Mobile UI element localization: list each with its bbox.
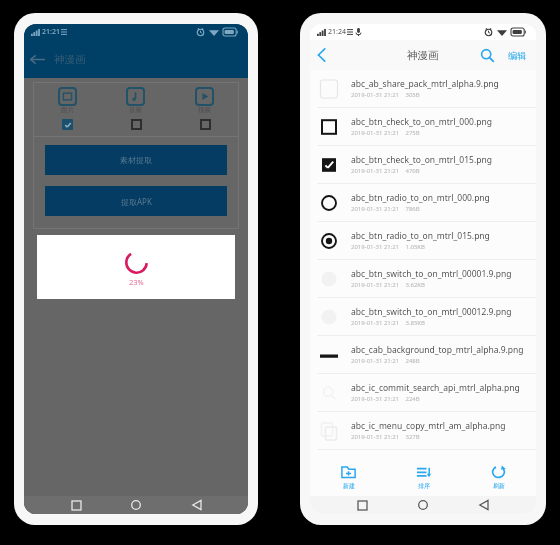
- button[interactable]: Home: [127, 496, 145, 514]
- button[interactable]: Home: [127, 496, 145, 514]
- staticText: 2019-01-31 21:21 3.62KB: [351, 281, 425, 289]
- staticText: abc_btn_radio_to_on_mtrl_015.png: [351, 230, 490, 242]
- staticText: abc_btn_check_to_on_mtrl_000.png: [351, 116, 492, 128]
- button[interactable]: Back: [310, 44, 332, 66]
- button[interactable]: 音频: [127, 88, 144, 114]
- button[interactable]: Search: [477, 45, 497, 65]
- staticText: abc_btn_radio_to_on_mtrl_000.png: [351, 192, 490, 204]
- button[interactable]: Checkbox: [197, 116, 213, 132]
- button[interactable]: 素材提取: [45, 145, 227, 175]
- staticText: 神漫画: [407, 49, 439, 62]
- staticText: abc_btn_switch_to_on_mtrl_00001.9.png: [351, 268, 512, 280]
- staticText: 23%: [129, 277, 144, 287]
- staticText: 21:21: [42, 27, 60, 37]
- staticText: 视频: [198, 106, 211, 114]
- staticText: 2019-01-31 21:21 275B: [351, 129, 420, 137]
- button[interactable]: Back: [188, 496, 206, 514]
- staticText: 2019-01-31 21:21 305B: [351, 91, 420, 99]
- button[interactable]: Recents: [67, 496, 85, 514]
- staticText: abc_cab_background_top_mtrl_alpha.9.png: [351, 344, 524, 356]
- staticText: 图片: [61, 106, 74, 114]
- button[interactable]: Checkbox: [59, 116, 75, 132]
- button[interactable]: Back: [26, 48, 48, 70]
- staticText: abc_ic_menu_copy_mtrl_am_alpha.png: [351, 420, 506, 432]
- staticText: 排序: [418, 482, 430, 490]
- button[interactable]: Recents: [67, 496, 85, 514]
- button[interactable]: 视频: [196, 88, 213, 114]
- button[interactable]: abc_btn_check_to_on_mtrl_015.png: [310, 146, 536, 184]
- button[interactable]: 编辑: [506, 46, 528, 65]
- button[interactable]: abc_btn_check_to_on_mtrl_000.png: [310, 108, 536, 146]
- staticText: 2019-01-31 21:21 470B: [351, 167, 420, 175]
- button[interactable]: 新建: [331, 464, 366, 493]
- button[interactable]: abc_btn_radio_to_on_mtrl_000.png: [310, 184, 536, 222]
- staticText: abc_btn_switch_to_on_mtrl_00012.9.png: [351, 306, 512, 318]
- staticText: abc_ab_share_pack_mtrl_alpha.9.png: [351, 78, 499, 90]
- staticText: 2019-01-31 21:21 248B: [351, 357, 420, 365]
- staticText: 音频: [129, 106, 142, 114]
- button[interactable]: abc_btn_switch_to_on_mtrl_00012.9.png: [310, 298, 536, 336]
- staticText: 编辑: [508, 50, 526, 61]
- staticText: 21:24: [328, 27, 346, 37]
- button[interactable]: 图片: [59, 88, 76, 114]
- button[interactable]: abc_cab_background_top_mtrl_alpha.9.png: [310, 336, 536, 374]
- staticText: 2019-01-31 21:21 3.85KB: [351, 319, 425, 327]
- staticText: 2019-01-31 21:21 327B: [351, 433, 420, 441]
- staticText: 刷新: [493, 482, 505, 490]
- button[interactable]: abc_btn_radio_to_on_mtrl_015.png: [310, 222, 536, 260]
- button[interactable]: Home: [414, 496, 432, 514]
- button[interactable]: abc_ic_commit_search_api_mtrl_alpha.png: [310, 374, 536, 412]
- staticText: 2019-01-31 21:21 786B: [351, 205, 420, 213]
- staticText: 2019-01-31 21:21 224B: [351, 395, 420, 403]
- button[interactable]: abc_ic_menu_copy_mtrl_am_alpha.png: [310, 412, 536, 450]
- button[interactable]: abc_btn_switch_to_on_mtrl_00001.9.png: [310, 260, 536, 298]
- button[interactable]: abc_ab_share_pack_mtrl_alpha.9.png: [310, 70, 536, 108]
- button[interactable]: 提取APK: [45, 186, 227, 216]
- button[interactable]: Back: [475, 496, 493, 514]
- staticText: abc_ic_commit_search_api_mtrl_alpha.png: [351, 382, 520, 394]
- staticText: abc_btn_check_to_on_mtrl_015.png: [351, 154, 492, 166]
- button[interactable]: Checkbox: [128, 116, 144, 132]
- button[interactable]: Back: [188, 496, 206, 514]
- staticText: 提取APK: [121, 196, 152, 207]
- button[interactable]: Recents: [353, 496, 371, 514]
- staticText: 2019-01-31 21:21 1.05KB: [351, 243, 425, 251]
- staticText: 素材提取: [120, 155, 152, 165]
- staticText: 神漫画: [54, 53, 86, 66]
- button[interactable]: 排序: [406, 464, 441, 493]
- staticText: 新建: [343, 482, 355, 490]
- button[interactable]: 刷新: [481, 464, 516, 493]
